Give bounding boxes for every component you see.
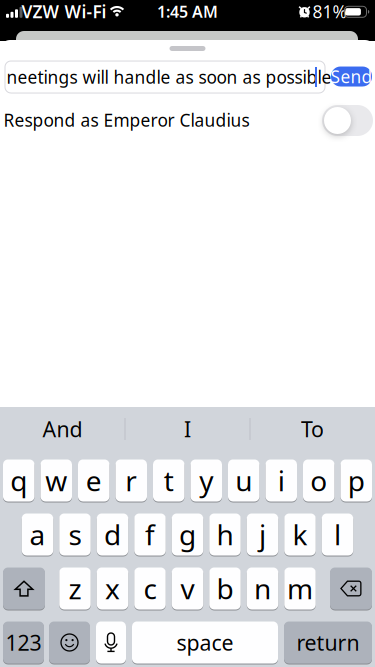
button[interactable]: t [153,459,184,502]
button[interactable]: v [172,567,203,610]
button[interactable]: e [78,459,109,502]
staticText: 81% [312,0,346,23]
button[interactable]: s [59,513,91,556]
staticText: k [292,516,307,553]
staticText: w [45,462,67,499]
staticText: I [184,415,191,443]
staticText: y [199,462,213,499]
button[interactable]: Send [331,66,372,86]
staticText: o [310,462,327,499]
button[interactable]: i [265,459,297,502]
staticText: l [334,516,341,553]
staticText: a [29,516,45,553]
staticText: t [164,462,174,499]
staticText: 123 [5,628,41,657]
button[interactable]: n [247,567,278,610]
staticText: VZW Wi-Fi [21,0,106,23]
button[interactable]: m [284,567,316,610]
button[interactable]: b [209,567,241,610]
button[interactable]: r [115,459,147,502]
button[interactable]: l [322,513,353,556]
button[interactable]: And [0,407,124,451]
button[interactable]: o [303,459,334,502]
staticText: i [278,462,285,499]
button[interactable]: w [40,459,72,502]
staticText: 1:45 AM [157,1,218,22]
button[interactable] [330,567,372,610]
button[interactable]: To [250,407,374,451]
button[interactable]: g [172,513,203,556]
staticText: z [68,570,81,607]
staticText: u [235,462,252,499]
button[interactable]: a [22,513,53,556]
staticText: c [143,570,156,607]
staticText: n [254,570,271,607]
staticText: s [68,516,81,553]
staticText: m [287,570,313,607]
button[interactable]: c [134,567,166,610]
button[interactable]: z [59,567,91,610]
button[interactable]: k [284,513,316,556]
staticText: r [125,462,137,499]
button[interactable]: return [284,621,372,664]
staticText: And [42,415,82,443]
staticText: q [10,462,27,499]
staticText: Respond as Emperor Claudius [3,108,249,131]
staticText: p [348,462,365,499]
button[interactable]: f [134,513,166,556]
button[interactable]: u [228,459,259,502]
button[interactable] [3,567,45,610]
button[interactable]: neetings will handle as soon as possible [5,61,325,93]
button[interactable]: p [340,459,372,502]
button[interactable] [322,105,373,136]
button[interactable]: y [190,459,222,502]
button[interactable]: d [97,513,128,556]
staticText: b [216,570,233,607]
staticText: space [176,628,233,657]
staticText: f [145,516,155,553]
staticText: To [301,415,324,443]
button[interactable]: q [3,459,34,502]
staticText: x [105,570,120,607]
staticText: h [216,516,233,553]
button[interactable]: h [209,513,241,556]
button[interactable]: x [97,567,128,610]
staticText: return [296,628,359,657]
staticText: neetings will handle as soon as possible [6,65,331,88]
button[interactable]: j [247,513,278,556]
button[interactable]: I [125,407,249,451]
button[interactable] [96,621,126,664]
staticText: Send [330,65,372,88]
staticText: e [86,462,102,499]
staticText: d [104,516,121,553]
button[interactable] [49,621,90,664]
staticText: j [259,516,266,553]
staticText: g [179,516,196,553]
button[interactable]: 123 [3,621,44,664]
button[interactable]: space [132,621,278,664]
staticText: v [180,570,194,607]
